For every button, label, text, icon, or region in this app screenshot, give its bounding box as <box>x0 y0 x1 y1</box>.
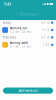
staticText: 7:40 <box>42 43 49 46</box>
staticText: 5.2 km · 28 min <box>9 30 31 34</box>
staticText: Morning run <box>9 26 27 30</box>
staticText: 9:41 <box>4 1 11 7</box>
button[interactable]: Morning run <box>0 25 56 35</box>
button[interactable]: Start workout <box>3 87 53 94</box>
button[interactable]: See all <box>41 21 53 24</box>
staticText: Yesterday <box>3 36 16 39</box>
staticText: Start workout <box>18 89 37 92</box>
button[interactable]: Evening walk <box>0 40 56 50</box>
staticText: Overview <box>19 11 36 17</box>
staticText: 2.1 km · 22 min <box>9 45 31 48</box>
staticText: Today <box>3 21 11 24</box>
button[interactable]: See all <box>41 36 53 39</box>
staticText: See all <box>41 36 50 39</box>
staticText: Evening walk <box>9 41 27 45</box>
staticText: 9:12 <box>42 28 49 32</box>
staticText: See all <box>41 21 50 24</box>
